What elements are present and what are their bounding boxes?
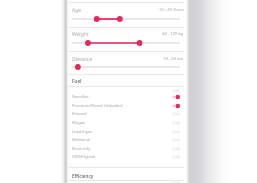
other: Biogas <box>172 120 180 126</box>
other: Ethanol <box>172 111 180 117</box>
staticText: Distance <box>72 56 93 63</box>
staticText: 16 - 45 Years <box>159 7 184 13</box>
staticText: Methanol <box>72 137 91 143</box>
button[interactable]: Gasoline <box>66 93 189 101</box>
other: Methanol <box>172 137 180 143</box>
other: Electricity <box>172 146 180 152</box>
staticText: Fuel <box>72 78 82 84</box>
button[interactable]: Premium/Diesel Unleaded <box>66 102 189 110</box>
button[interactable]: Liquid gas <box>66 128 189 136</box>
other: Premium/Diesel Unleaded <box>172 103 180 109</box>
button[interactable]: CNG/Hybrid <box>66 153 189 161</box>
button[interactable]: Toggle <box>66 87 189 95</box>
button[interactable]: Fuel <box>72 78 82 84</box>
other: Liquid gas <box>172 129 180 135</box>
button[interactable]: Weight <box>66 31 189 52</box>
button[interactable]: Ethanol <box>66 110 189 118</box>
staticText: Weight <box>72 31 89 38</box>
staticText: Ethanol <box>72 111 87 117</box>
other: Toggle <box>172 180 180 183</box>
staticText: 10 - 50 km <box>163 56 184 62</box>
staticText: 45 - 120 kg <box>162 31 184 37</box>
other: Gasoline <box>172 94 180 100</box>
button[interactable]: Electricity <box>66 145 189 153</box>
staticText: Efficiency <box>72 173 94 179</box>
button[interactable]: Distance <box>66 56 189 77</box>
staticText: Electricity <box>72 146 91 152</box>
staticText: Gasoline <box>72 94 89 100</box>
staticText: Biogas <box>72 120 85 126</box>
other: Toggle <box>172 88 180 94</box>
button[interactable]: Age <box>66 7 189 28</box>
button[interactable]: Biogas <box>66 119 189 127</box>
staticText: CNG/Hybrid <box>72 154 96 160</box>
staticText: Premium/Diesel Unleaded <box>72 103 123 109</box>
staticText: Liquid gas <box>72 129 92 135</box>
button[interactable]: Efficiency <box>72 173 94 179</box>
staticText: Age <box>72 7 82 14</box>
button[interactable]: Methanol <box>66 136 189 144</box>
other: CNG/Hybrid <box>172 154 180 160</box>
button[interactable]: Toggle <box>66 179 189 183</box>
